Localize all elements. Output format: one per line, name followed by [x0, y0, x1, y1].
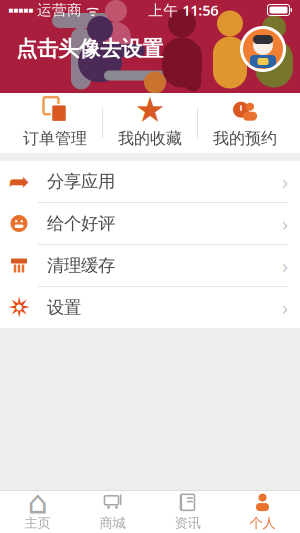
staticText: 我的预约 [213, 129, 277, 148]
button[interactable]: ✷ [0, 287, 300, 328]
button[interactable]: ⌂ [0, 491, 75, 533]
staticText: 资讯 [174, 515, 200, 531]
button[interactable]: 清理缓存 [0, 245, 300, 286]
staticText: 个人 [249, 515, 275, 531]
button[interactable]: 商城 [75, 491, 150, 533]
button[interactable]: 个人 [225, 491, 300, 533]
button[interactable]: ★ [103, 94, 197, 152]
button[interactable]: 资讯 [150, 491, 225, 533]
staticText: ᯤ [82, 0, 99, 20]
button[interactable]: ➦ [0, 161, 300, 202]
staticText: 运营商 [33, 1, 82, 19]
staticText: 上午 11:56 [148, 0, 218, 20]
staticText: 给个好评 [47, 213, 115, 234]
staticText: 商城 [99, 515, 125, 531]
staticText: 点击头像去设置 [16, 36, 163, 62]
button[interactable]: 给个好评 [0, 203, 300, 244]
staticText: 分享应用 [47, 171, 115, 192]
staticText: 主页 [24, 515, 50, 531]
button[interactable]: 订单管理 [8, 94, 102, 152]
staticText: 订单管理 [23, 129, 87, 148]
staticText: 我的收藏 [118, 129, 182, 148]
staticText: ▪▪▪▪▪ [8, 5, 33, 15]
staticText: › [282, 210, 288, 237]
staticText: › [282, 252, 288, 279]
staticText: ★ [134, 90, 165, 129]
button[interactable]: 头像设置 [240, 26, 286, 72]
staticText: ✷ [7, 292, 30, 323]
button[interactable]: 我的预约 [198, 94, 292, 152]
staticText: ⌂ [27, 484, 47, 520]
staticText: › [282, 294, 288, 321]
staticText: 清理缓存 [47, 255, 115, 276]
staticText: 设置 [47, 297, 81, 318]
staticText: ➦ [8, 167, 29, 196]
staticText: › [282, 168, 288, 195]
